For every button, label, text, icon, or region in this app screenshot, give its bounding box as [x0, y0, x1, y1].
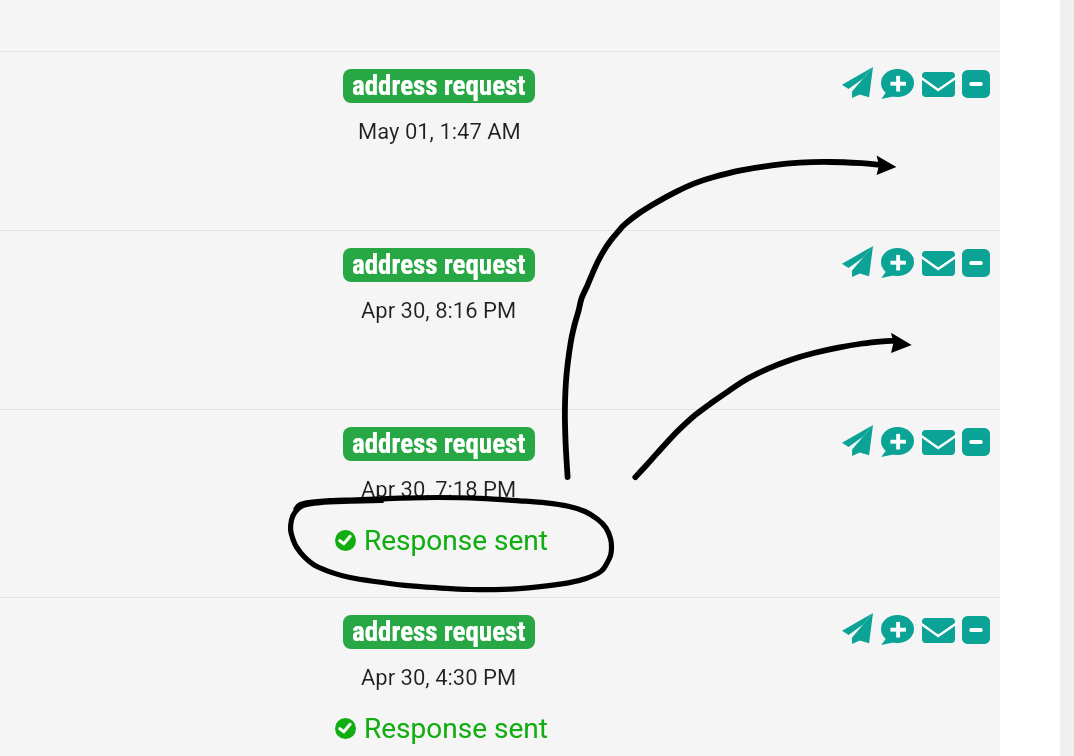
- staticText: address request: [352, 249, 526, 281]
- button[interactable]: Send: [837, 610, 877, 650]
- button[interactable]: address request: [352, 616, 526, 648]
- button[interactable]: Email: [917, 243, 957, 283]
- button[interactable]: Send: [837, 64, 877, 104]
- button[interactable]: address request: [352, 249, 526, 281]
- button[interactable]: address request: [0, 598, 1000, 756]
- button[interactable]: Email: [917, 422, 957, 462]
- button[interactable]: Send: [837, 422, 877, 462]
- button[interactable]: Remove: [957, 610, 997, 650]
- button[interactable]: Remove: [957, 422, 997, 462]
- staticText: Response sent: [364, 524, 548, 557]
- staticText: Apr 30, 8:16 PM: [361, 298, 517, 324]
- button[interactable]: Email: [917, 610, 957, 650]
- button[interactable]: address request: [0, 410, 1000, 597]
- button[interactable]: Add comment: [877, 64, 917, 104]
- staticText: Apr 30, 7:18 PM: [361, 477, 517, 503]
- staticText: address request: [352, 616, 526, 648]
- button[interactable]: Remove: [957, 243, 997, 283]
- staticText: address request: [352, 70, 526, 102]
- staticText: Apr 30, 4:30 PM: [361, 665, 517, 691]
- staticText: address request: [352, 428, 526, 460]
- button[interactable]: Send: [837, 243, 877, 283]
- staticText: May 01, 1:47 AM: [358, 119, 521, 145]
- button[interactable]: address request: [0, 231, 1000, 409]
- button[interactable]: Email: [917, 64, 957, 104]
- button[interactable]: Add comment: [877, 243, 917, 283]
- button[interactable]: Add comment: [877, 422, 917, 462]
- button[interactable]: address request: [352, 428, 526, 460]
- button[interactable]: address request: [352, 70, 526, 102]
- button[interactable]: Add comment: [877, 610, 917, 650]
- staticText: Response sent: [364, 712, 548, 745]
- button[interactable]: address request: [0, 52, 1000, 230]
- button[interactable]: Remove: [957, 64, 997, 104]
